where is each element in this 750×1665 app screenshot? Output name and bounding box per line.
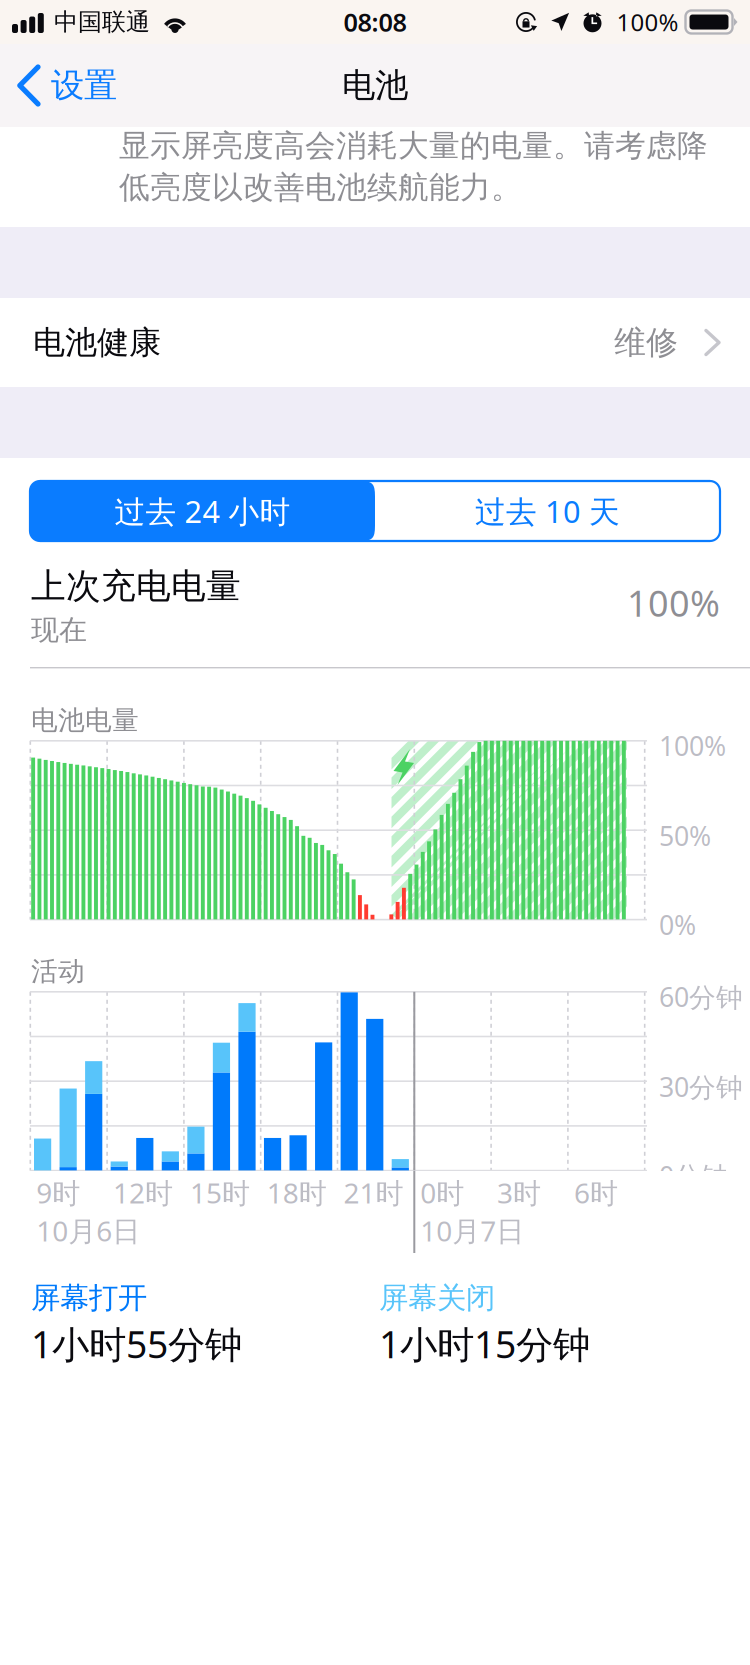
staticText: 屏幕关闭 [379, 1280, 495, 1316]
staticText: 设置 [51, 65, 117, 106]
staticText: 08:08 [343, 5, 406, 39]
staticText: 12时 [113, 1174, 173, 1211]
staticText: 18时 [267, 1174, 327, 1211]
staticText: 维修 [614, 323, 678, 362]
staticText: 21时 [343, 1174, 403, 1211]
staticText: 活动 [31, 955, 85, 988]
staticText: 中国联通 [54, 7, 150, 37]
staticText: 10月6日 [36, 1212, 140, 1249]
staticText: 电池健康 [33, 323, 161, 362]
staticText: 0% [659, 907, 696, 942]
button[interactable]: 过去 10 天 [375, 481, 720, 541]
staticText: 电池电量 [31, 704, 139, 737]
staticText: 过去 24 小时 [114, 491, 290, 531]
staticText: 屏幕打开 [31, 1280, 147, 1316]
staticText: 6时 [574, 1174, 618, 1211]
staticText: 60分钟 [659, 979, 743, 1014]
staticText: 0分钟 [659, 1158, 728, 1193]
staticText: 显示屏亮度高会消耗大量的电量。请考虑降 [119, 127, 708, 165]
staticText: 上次充电电量 [31, 565, 241, 608]
staticText: 低亮度以改善电池续航能力。 [119, 169, 522, 206]
staticText: 1小时15分钟 [379, 1319, 590, 1369]
button[interactable]: 过去 24 小时 [30, 481, 375, 541]
button[interactable]: 电池健康 [0, 298, 750, 387]
staticText: 电池 [342, 65, 408, 106]
staticText: 9时 [36, 1174, 80, 1211]
staticText: 50% [659, 818, 711, 853]
staticText: 100% [616, 6, 678, 38]
button[interactable]: 设置 [0, 44, 131, 127]
staticText: 1小时55分钟 [31, 1319, 242, 1369]
staticText: 现在 [31, 613, 87, 647]
staticText: 10月7日 [420, 1212, 524, 1249]
staticText: 3时 [497, 1174, 541, 1211]
staticText: 0时 [420, 1174, 464, 1211]
staticText: 100% [659, 728, 726, 763]
staticText: 过去 10 天 [475, 491, 620, 531]
staticText: 30分钟 [659, 1069, 743, 1104]
staticText: 100% [627, 579, 720, 627]
staticText: 15时 [190, 1174, 250, 1211]
